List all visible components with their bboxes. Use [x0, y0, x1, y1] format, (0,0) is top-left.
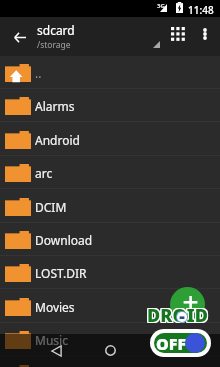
button[interactable]: DCIM	[0, 190, 220, 223]
button[interactable]: More options	[193, 22, 217, 46]
staticText: ..	[35, 65, 42, 81]
staticText: sdcard	[37, 22, 75, 38]
staticText: Alarms	[35, 98, 75, 114]
staticText: DCIM	[35, 199, 67, 215]
staticText: LOST.DIR	[35, 265, 87, 281]
button[interactable]: Music	[0, 323, 220, 356]
button[interactable]: Notifications	[0, 357, 220, 367]
staticText: DROID	[146, 304, 207, 329]
staticText: DROID	[147, 302, 208, 327]
staticText: arc	[35, 165, 53, 181]
staticText: DROID	[148, 302, 209, 327]
staticText: Android	[35, 132, 80, 148]
staticText: DROID	[147, 303, 208, 328]
button[interactable]: Back	[2, 19, 38, 55]
button[interactable]: Recents	[145, 334, 185, 367]
button[interactable]: ..	[0, 56, 220, 89]
button[interactable]: arc	[0, 156, 220, 189]
staticText: 3G	[157, 2, 165, 10]
button[interactable]: Android	[0, 123, 220, 156]
staticText: DROID	[146, 303, 207, 328]
button[interactable]: Home	[90, 334, 130, 367]
button[interactable]: Back	[36, 334, 76, 367]
staticText: Music	[35, 332, 68, 348]
staticText: 11:48	[188, 3, 214, 17]
staticText: DROID	[147, 304, 208, 329]
staticText: Movies	[35, 299, 75, 315]
button[interactable]: Toggle off	[154, 333, 207, 353]
staticText: DROID	[148, 303, 209, 328]
staticText: DROID	[146, 302, 207, 327]
button[interactable]: Movies	[0, 290, 220, 323]
staticText: OFF	[156, 333, 187, 353]
staticText: DROID	[148, 304, 209, 329]
button[interactable]: LOST.DIR	[0, 256, 220, 289]
staticText: Download	[35, 232, 93, 248]
button[interactable]: Alarms	[0, 89, 220, 122]
button[interactable]: Grid view	[166, 22, 192, 48]
button[interactable]: Download	[0, 223, 220, 256]
staticText: /storage	[37, 39, 71, 51]
